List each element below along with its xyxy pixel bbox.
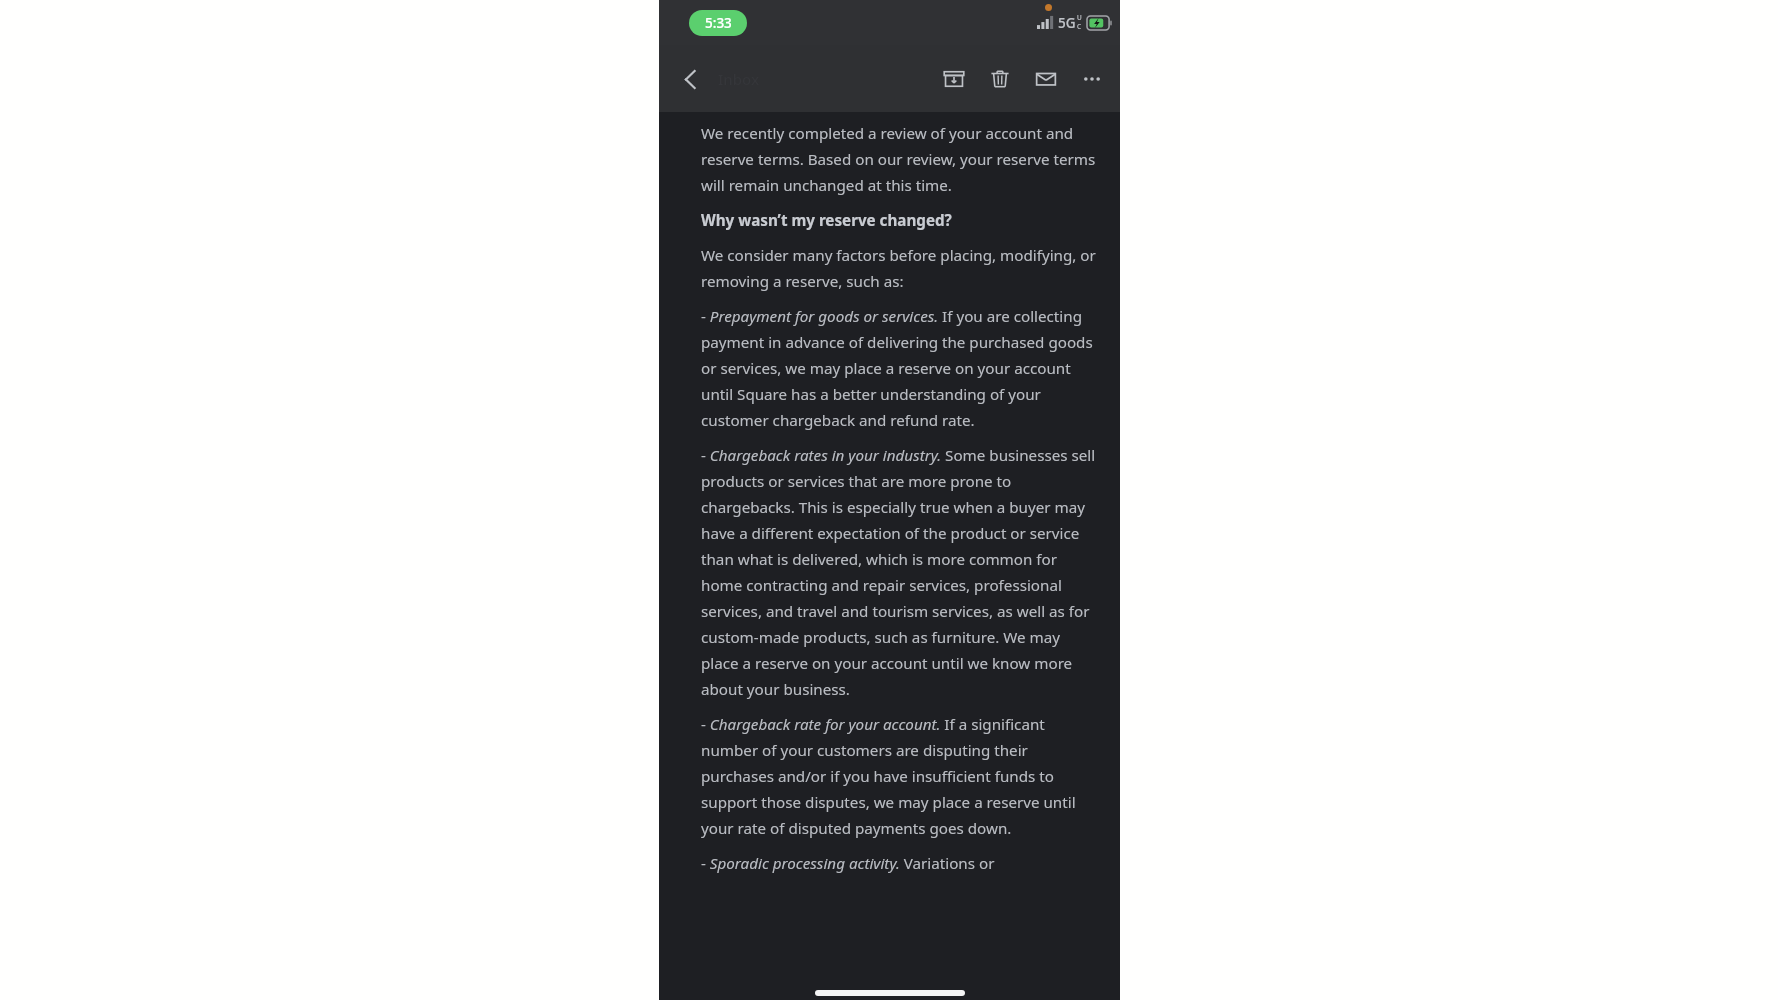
staticText: - Prepayment for goods or services. If y… [701, 306, 1100, 431]
staticText: - Sporadic processing activity. Variatio… [701, 853, 995, 874]
staticText: We recently completed a review of your a… [701, 123, 1100, 196]
button[interactable]: More options [1069, 56, 1115, 102]
button[interactable]: Delete [977, 56, 1023, 102]
staticText: U [1077, 13, 1082, 22]
staticText: 5G [1058, 14, 1076, 32]
staticText: - Chargeback rates in your industry. Som… [701, 445, 1100, 700]
staticText: C [1077, 22, 1082, 31]
staticText: 5:33 [705, 14, 732, 32]
button[interactable]: Archive [931, 56, 977, 102]
staticText: - Chargeback rate for your account. If a… [701, 714, 1100, 839]
button[interactable]: Mark as unread [1023, 56, 1069, 102]
button[interactable]: Back [667, 56, 713, 102]
staticText: We consider many factors before placing,… [701, 245, 1100, 292]
staticText: Why wasn’t my reserve changed? [701, 210, 952, 231]
